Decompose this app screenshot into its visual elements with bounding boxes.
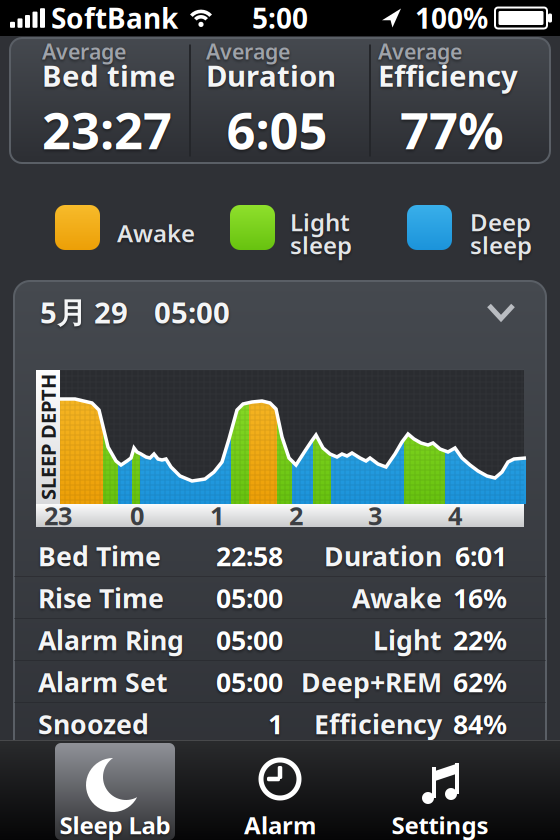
staticText: 23	[44, 499, 72, 532]
staticText: Deep	[470, 206, 531, 238]
staticText: 2	[289, 499, 303, 532]
staticText: Duration	[206, 56, 336, 95]
staticText: SLEEP DEPTH	[0, 424, 111, 450]
staticText: 05:00	[216, 622, 283, 658]
staticText: 05:00	[154, 292, 230, 331]
staticText: 77%	[400, 96, 504, 163]
staticText: 0	[130, 499, 144, 532]
staticText: Settings	[391, 809, 488, 840]
staticText: 16%	[453, 580, 507, 616]
staticText: Efficiency	[378, 56, 518, 95]
staticText: 23:27	[42, 96, 172, 163]
staticText: SoftBank	[51, 0, 178, 37]
staticText: Light	[373, 622, 442, 658]
staticText: Alarm Ring	[38, 622, 184, 658]
staticText: Light	[290, 206, 350, 238]
staticText: 100%	[415, 0, 488, 37]
staticText: 6:01	[455, 538, 507, 574]
staticText: Bed Time	[38, 538, 161, 574]
staticText: 05:00	[216, 580, 283, 616]
staticText: sleep	[290, 229, 352, 261]
staticText: 5:00	[252, 0, 308, 37]
staticText: Efficiency	[314, 706, 442, 742]
staticText: Deep+REM	[301, 664, 442, 700]
staticText: 5月 29	[40, 292, 128, 331]
staticText: 6:05	[226, 96, 327, 163]
staticText: 05:00	[216, 664, 283, 700]
staticText: Average	[206, 37, 290, 65]
staticText: 84%	[453, 706, 507, 742]
staticText: Average	[42, 37, 126, 65]
button[interactable]: Sleep Lab	[55, 743, 175, 840]
staticText: Alarm Set	[38, 664, 168, 700]
button[interactable]: Settings	[380, 743, 500, 840]
button[interactable]: Alarm	[220, 743, 340, 840]
staticText: 62%	[453, 664, 507, 700]
staticText: 4	[448, 499, 462, 532]
staticText: Snoozed	[38, 706, 149, 742]
staticText: sleep	[470, 229, 532, 261]
staticText: Awake	[352, 580, 442, 616]
button[interactable]: Toggle day details	[14, 281, 546, 343]
staticText: 1	[210, 499, 224, 532]
staticText: Rise Time	[38, 580, 164, 616]
staticText: Awake	[117, 217, 195, 249]
staticText: 22:58	[216, 538, 283, 574]
staticText: Bed time	[42, 56, 176, 95]
staticText: 22%	[453, 622, 507, 658]
staticText: Sleep Lab	[59, 809, 170, 840]
staticText: 3	[368, 499, 382, 532]
staticText: Alarm	[244, 809, 316, 840]
staticText: Average	[378, 37, 462, 65]
staticText: 1	[268, 706, 283, 742]
staticText: Duration	[324, 538, 442, 574]
